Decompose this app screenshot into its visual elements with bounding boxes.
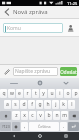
staticText: l bbox=[71, 101, 73, 108]
button[interactable]: Shift bbox=[0, 111, 11, 120]
staticText: p bbox=[74, 90, 78, 97]
button[interactable]: Back bbox=[0, 6, 13, 18]
staticText: s bbox=[14, 101, 17, 108]
staticText: Nová zpráva bbox=[13, 8, 48, 16]
staticText: Komu bbox=[7, 25, 21, 32]
button[interactable]: g bbox=[36, 100, 43, 109]
button[interactable]: z bbox=[12, 111, 20, 120]
button[interactable]: c bbox=[29, 111, 36, 120]
staticText: h bbox=[46, 101, 50, 108]
button[interactable]: Voice input bbox=[27, 78, 53, 88]
staticText: x bbox=[23, 112, 26, 119]
button[interactable]: r bbox=[24, 89, 31, 98]
staticText: f bbox=[31, 101, 33, 108]
button[interactable]: l bbox=[68, 100, 75, 109]
staticText: Čeština bbox=[38, 124, 51, 129]
button[interactable]: q bbox=[0, 89, 7, 98]
staticText: c bbox=[31, 112, 34, 119]
staticText: k bbox=[62, 101, 65, 108]
staticText: Odeslat bbox=[60, 69, 77, 75]
staticText: Napište zprávu bbox=[15, 68, 51, 75]
button[interactable]: , bbox=[21, 122, 28, 131]
staticText: j bbox=[55, 101, 57, 108]
staticText: m bbox=[62, 112, 67, 119]
button[interactable]: Attach bbox=[2, 67, 12, 77]
staticText: q bbox=[2, 90, 6, 97]
button[interactable]: t bbox=[32, 89, 39, 98]
button[interactable]: h bbox=[44, 100, 51, 109]
staticText: e bbox=[18, 90, 21, 97]
button[interactable]: x bbox=[21, 111, 28, 120]
staticText: t bbox=[35, 90, 37, 97]
staticText: y bbox=[42, 90, 45, 97]
staticText: v bbox=[39, 112, 42, 119]
button[interactable]: f bbox=[28, 100, 35, 109]
button[interactable]: Backspace bbox=[69, 111, 79, 120]
button[interactable]: m bbox=[61, 111, 68, 120]
button[interactable]: e bbox=[16, 89, 23, 98]
staticText: i bbox=[59, 90, 61, 97]
button[interactable] bbox=[68, 122, 79, 131]
staticText: g bbox=[38, 101, 42, 108]
button[interactable]: Recents bbox=[53, 132, 79, 140]
staticText: n bbox=[55, 112, 59, 119]
staticText: a bbox=[6, 101, 9, 108]
button[interactable]: d bbox=[20, 100, 27, 109]
button[interactable]: u bbox=[48, 89, 55, 98]
button[interactable]: ?123 bbox=[0, 122, 11, 131]
staticText: . bbox=[63, 123, 65, 130]
button[interactable]: a bbox=[4, 100, 11, 109]
staticText: r bbox=[26, 90, 29, 97]
button[interactable]: n bbox=[53, 111, 60, 120]
button[interactable]: b bbox=[45, 111, 52, 120]
button[interactable]: Čeština bbox=[29, 122, 59, 131]
staticText: 11:25 bbox=[67, 1, 78, 6]
staticText: , bbox=[24, 123, 26, 130]
staticText: w bbox=[10, 90, 14, 97]
button[interactable]: Hide keyboard bbox=[53, 78, 79, 88]
staticText: b bbox=[47, 112, 51, 119]
button[interactable]: i bbox=[56, 89, 63, 98]
staticText: u bbox=[50, 90, 54, 97]
button[interactable]: y bbox=[40, 89, 47, 98]
button[interactable] bbox=[12, 122, 20, 131]
button[interactable]: Back bbox=[0, 132, 27, 140]
button[interactable]: w bbox=[8, 89, 15, 98]
staticText: ?123 bbox=[2, 124, 10, 129]
button[interactable]: Suggestions bbox=[0, 78, 27, 88]
button[interactable]: Odeslat bbox=[60, 67, 77, 76]
button[interactable]: Komu bbox=[3, 23, 63, 33]
staticText: o bbox=[66, 90, 70, 97]
button[interactable]: Napište zprávu bbox=[13, 67, 58, 76]
button[interactable]: j bbox=[52, 100, 59, 109]
button[interactable]: k bbox=[60, 100, 67, 109]
button[interactable]: s bbox=[12, 100, 19, 109]
button[interactable]: . bbox=[60, 122, 67, 131]
button[interactable]: Home bbox=[27, 132, 53, 140]
button[interactable]: v bbox=[37, 111, 44, 120]
staticText: z bbox=[15, 112, 18, 119]
button[interactable]: p bbox=[72, 89, 79, 98]
staticText: d bbox=[22, 101, 26, 108]
button[interactable]: Add contact bbox=[65, 22, 76, 33]
button[interactable]: o bbox=[64, 89, 71, 98]
